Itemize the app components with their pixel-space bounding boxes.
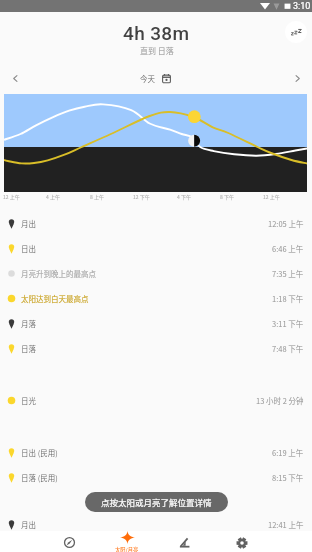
button[interactable]: 太阳达到白天最高点 xyxy=(0,286,312,311)
staticText: 7:48 下午 xyxy=(272,343,304,354)
button[interactable]: Angle xyxy=(155,531,213,552)
staticText: 6:19 上午 xyxy=(272,447,304,458)
staticText: 月落 xyxy=(21,318,36,329)
button[interactable]: 日落 xyxy=(0,336,312,361)
staticText: 太阳达到白天最高点 xyxy=(21,293,89,304)
staticText: 8:15 下午 xyxy=(272,472,304,483)
staticText: 点按太阳或月亮了解位置详情 xyxy=(101,496,212,508)
staticText: 8 上午 xyxy=(90,193,104,200)
button[interactable]: Sun and moon xyxy=(98,531,155,552)
button[interactable]: Next day xyxy=(282,63,312,94)
staticText: 日出 (民用) xyxy=(21,447,58,458)
button[interactable]: 日出 (民用) xyxy=(0,440,312,465)
staticText: 太阳/月亮 xyxy=(115,546,139,552)
button[interactable]: Compass xyxy=(41,531,98,552)
staticText: 日出 xyxy=(21,243,36,254)
staticText: 1:18 下午 xyxy=(272,293,304,304)
staticText: 4 上午 xyxy=(46,193,60,200)
staticText: 13 小时 2 分钟 xyxy=(256,395,304,406)
button[interactable]: Previous day xyxy=(0,63,30,94)
staticText: 今天 xyxy=(140,73,155,84)
button[interactable]: 日光 xyxy=(0,388,312,413)
button[interactable]: 月落 xyxy=(0,311,312,336)
staticText: 直到 日落 xyxy=(140,45,174,57)
staticText: 12 下午 xyxy=(133,193,150,200)
staticText: 月亮升到晚上的最高点 xyxy=(21,268,96,279)
button[interactable]: 点按太阳或月亮了解位置详情 xyxy=(85,492,228,512)
button[interactable]: 月亮升到晚上的最高点 xyxy=(0,261,312,286)
staticText: 12 上午 xyxy=(3,193,20,200)
staticText: 3:10 xyxy=(293,1,311,12)
staticText: 6:46 上午 xyxy=(272,243,304,254)
button[interactable]: 今天 xyxy=(132,69,179,88)
button[interactable]: 日出 xyxy=(0,236,312,261)
staticText: 月出 xyxy=(21,218,36,229)
staticText: 12 上午 xyxy=(263,193,280,200)
staticText: 日落 xyxy=(21,343,36,354)
staticText: 3:11 下午 xyxy=(272,318,304,329)
button[interactable]: 月出 xyxy=(0,211,312,236)
staticText: 4 下午 xyxy=(177,193,191,200)
button[interactable]: Sleep timer xyxy=(285,21,307,43)
staticText: 8 下午 xyxy=(220,193,234,200)
staticText: 日落 (民用) xyxy=(21,472,58,483)
button[interactable]: 日落 (民用) xyxy=(0,465,312,490)
staticText: 7:35 上午 xyxy=(272,268,304,279)
staticText: 月出 xyxy=(21,519,36,530)
staticText: 4h 38m xyxy=(123,22,190,44)
staticText: 12:05 上午 xyxy=(268,218,304,229)
staticText: 日光 xyxy=(21,395,36,406)
button[interactable]: 月出 xyxy=(0,512,312,537)
staticText: 12:41 上午 xyxy=(268,519,304,530)
button[interactable]: Settings xyxy=(213,531,271,552)
